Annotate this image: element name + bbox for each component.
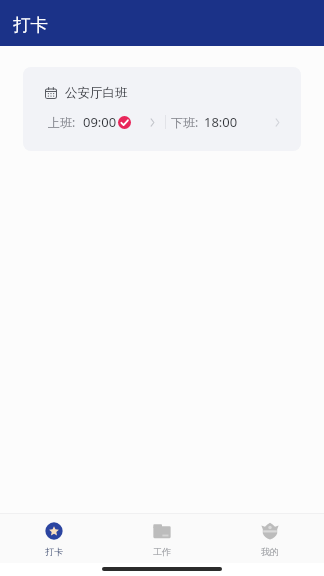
staticText: 18:00 — [204, 113, 238, 131]
staticText: 工作 — [153, 546, 171, 557]
button[interactable]: 打卡 tab — [0, 514, 108, 557]
staticText: 09:00 — [83, 113, 117, 131]
button[interactable]: 我的 tab — [216, 514, 324, 557]
staticText: 下班: — [171, 114, 199, 130]
staticText: 我的 — [261, 546, 279, 557]
staticText: 公安厅白班 — [65, 85, 128, 101]
staticText: 打卡 — [45, 546, 63, 557]
staticText: 打卡 — [13, 14, 48, 36]
button[interactable]: 工作 tab — [108, 514, 216, 557]
button[interactable]: 公安厅白班 — [23, 67, 301, 151]
staticText: 上班: — [48, 114, 76, 130]
